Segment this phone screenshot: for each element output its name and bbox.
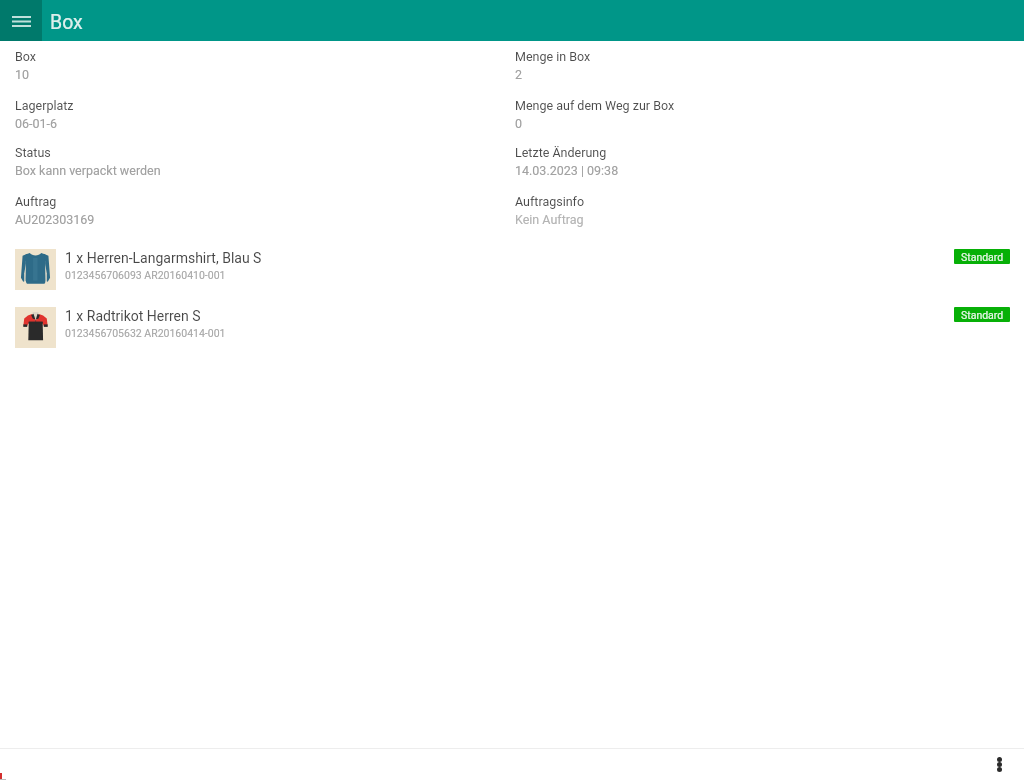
staticText: 10 — [15, 67, 30, 82]
staticText: Letzte Änderung — [515, 145, 607, 160]
staticText: 0123456706093 AR20160410-001 — [65, 269, 226, 281]
staticText: 1 x Radtrikot Herren S — [65, 308, 201, 324]
button[interactable]: More options — [984, 749, 1015, 780]
staticText: Box kann verpackt werden — [15, 163, 161, 178]
staticText: AU202303169 — [15, 212, 95, 227]
staticText: 0 — [515, 116, 523, 131]
staticText: 0123456705632 AR20160414-001 — [65, 327, 226, 339]
staticText: Menge in Box — [515, 49, 591, 64]
staticText: Kein Auftrag — [515, 212, 584, 227]
staticText: 1 x Herren-Langarmshirt, Blau S — [65, 250, 262, 266]
staticText: Box — [15, 49, 36, 64]
staticText: Auftrag — [15, 194, 57, 209]
staticText: Lagerplatz — [15, 98, 74, 113]
button[interactable]: 1 x Radtrikot Herren S — [0, 300, 1024, 358]
staticText: Menge auf dem Weg zur Box — [515, 98, 675, 113]
button[interactable]: Open navigation drawer — [0, 0, 42, 41]
staticText: Standard — [961, 309, 1004, 321]
staticText: 2 — [515, 67, 523, 82]
staticText: Standard — [961, 251, 1004, 263]
staticText: Status — [15, 145, 51, 160]
button[interactable]: Standard — [954, 307, 1010, 322]
staticText: Auftragsinfo — [515, 194, 585, 209]
staticText: 06-01-6 — [15, 116, 58, 131]
staticText: Box — [50, 11, 83, 34]
button[interactable]: Standard — [954, 249, 1010, 264]
button[interactable]: 1 x Herren-Langarmshirt, Blau S — [0, 242, 1024, 300]
staticText: 14.03.2023 | 09:38 — [515, 163, 619, 178]
